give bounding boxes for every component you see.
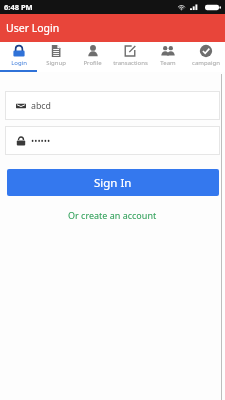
staticText: Login bbox=[11, 59, 27, 67]
staticText: Or create an account bbox=[68, 209, 157, 221]
staticText: Team bbox=[160, 59, 176, 67]
button[interactable]: abcd bbox=[5, 91, 220, 120]
staticText: Profile bbox=[83, 59, 102, 67]
staticText: •••••• bbox=[31, 135, 51, 147]
button[interactable]: •••••• bbox=[5, 126, 220, 155]
button[interactable]: Sign In bbox=[7, 169, 219, 196]
button[interactable]: Login bbox=[0, 42, 37, 72]
button[interactable]: Team bbox=[149, 42, 187, 72]
button[interactable]: Profile bbox=[74, 42, 111, 72]
button[interactable]: transactions bbox=[111, 42, 149, 72]
button[interactable]: campaign bbox=[187, 42, 225, 72]
staticText: User Login bbox=[6, 21, 60, 35]
staticText: Signup bbox=[46, 59, 66, 67]
staticText: abcd bbox=[31, 100, 51, 112]
staticText: Sign In bbox=[94, 175, 132, 191]
staticText: campaign bbox=[192, 59, 220, 67]
button[interactable]: Signup bbox=[37, 42, 74, 72]
staticText: transactions bbox=[113, 59, 148, 67]
button[interactable]: Or create an account bbox=[60, 207, 165, 223]
staticText: 6:48 PM bbox=[4, 2, 33, 12]
